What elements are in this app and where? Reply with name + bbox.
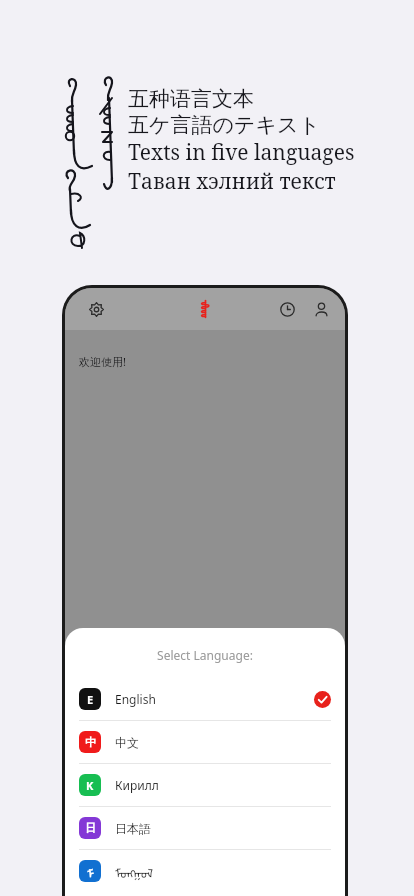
staticText: 五ケ言語のテキスト <box>128 112 320 138</box>
button[interactable]: 中 <box>65 721 345 763</box>
staticText: Кирилл <box>115 777 159 793</box>
staticText: 日本語 <box>115 821 151 836</box>
button[interactable]: App logo <box>192 296 218 322</box>
button[interactable]: History <box>274 296 300 322</box>
staticText: ᠮᠣᠩᠭᠣᠯ <box>115 861 153 882</box>
button[interactable]: Settings <box>83 296 109 322</box>
staticText: Texts in five languages <box>128 138 355 167</box>
button[interactable]: Convert <box>269 826 293 850</box>
button[interactable]: 日 <box>65 807 345 849</box>
button[interactable]: ᠮ <box>65 850 345 892</box>
staticText: 欢迎使用! <box>79 354 126 369</box>
button[interactable]: Favorite <box>309 826 333 850</box>
staticText: 日 <box>85 821 96 835</box>
staticText: 中 <box>85 735 96 749</box>
staticText: 五种语言文本 <box>128 86 254 112</box>
staticText: English <box>115 691 156 707</box>
staticText: ᠮ <box>87 862 94 881</box>
staticText: Select Language: <box>65 647 345 663</box>
staticText: K <box>86 778 94 793</box>
staticText: Welcome to use! <box>79 870 165 885</box>
staticText: E <box>87 692 94 707</box>
button[interactable]: E <box>65 678 345 720</box>
button[interactable]: Account <box>308 296 334 322</box>
button[interactable]: K <box>65 764 345 806</box>
staticText: 中文 <box>115 735 139 750</box>
staticText: Таван хэлний текст <box>128 167 336 196</box>
